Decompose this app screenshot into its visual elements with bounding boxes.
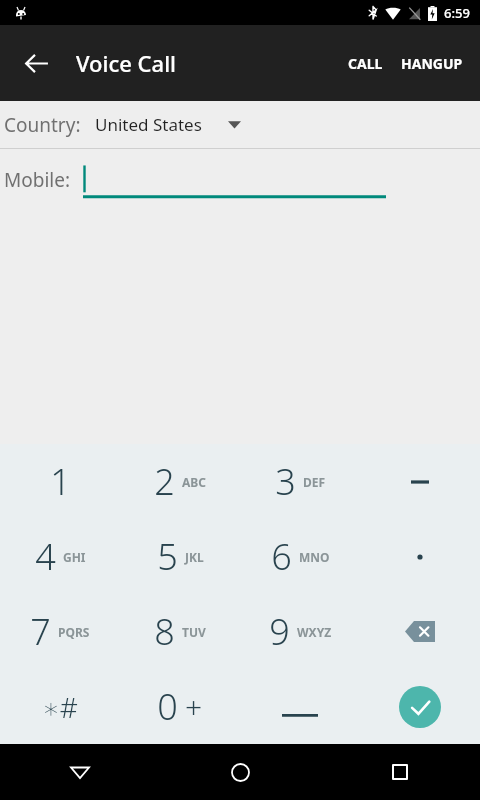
button[interactable]: 4 (0, 519, 120, 594)
staticText: Voice Call (76, 48, 177, 78)
button[interactable]: 5 (120, 519, 240, 594)
button[interactable]: HANGUP (392, 40, 472, 87)
staticText: 6 (271, 532, 292, 581)
staticText: Mobile: (4, 167, 71, 193)
staticText: 5 (157, 532, 178, 581)
button[interactable]: Country: (0, 101, 480, 148)
button[interactable]: Dash (360, 444, 480, 519)
staticText: 3 (275, 457, 296, 506)
button[interactable]: ∗# (0, 669, 120, 744)
staticText: 2 (154, 457, 175, 506)
button[interactable]: Done (360, 669, 480, 744)
staticText: PQRS (58, 624, 90, 640)
button[interactable]: CALL (339, 40, 392, 87)
staticText: 0 (157, 682, 178, 731)
button[interactable]: Period (360, 519, 480, 594)
staticText: JKL (185, 549, 204, 565)
button[interactable]: 0 (120, 669, 240, 744)
staticText: GHI (63, 549, 86, 565)
staticText: MNO (299, 549, 330, 565)
button[interactable]: 6 (240, 519, 360, 594)
button[interactable]: Back (12, 39, 60, 87)
button[interactable]: Recent apps (320, 744, 480, 800)
button[interactable]: 7 (0, 594, 120, 669)
staticText: ABC (182, 474, 206, 490)
staticText: TUV (182, 624, 206, 640)
button[interactable]: 1 (0, 444, 120, 519)
staticText: ∗# (42, 688, 78, 726)
staticText: 9 (269, 607, 290, 656)
button[interactable]: 3 (240, 444, 360, 519)
staticText: United States (95, 113, 202, 136)
staticText: WXYZ (297, 624, 332, 640)
button[interactable]: Hide keyboard (0, 744, 160, 800)
button[interactable]: Delete (360, 594, 480, 669)
staticText: + (185, 686, 203, 727)
staticText: 4 (35, 532, 56, 581)
staticText: 6:59 (444, 4, 470, 22)
staticText: CALL (348, 54, 383, 73)
button[interactable]: 8 (120, 594, 240, 669)
staticText: 7 (30, 607, 51, 656)
staticText: Country: (4, 112, 81, 138)
button[interactable]: Space (240, 669, 360, 744)
button[interactable]: 9 (240, 594, 360, 669)
staticText: 8 (154, 607, 175, 656)
staticText: DEF (303, 474, 326, 490)
staticText: 1 (50, 457, 71, 506)
staticText: HANGUP (401, 54, 463, 73)
button[interactable] (83, 152, 386, 208)
button[interactable]: 2 (120, 444, 240, 519)
button[interactable]: Home (160, 744, 320, 800)
